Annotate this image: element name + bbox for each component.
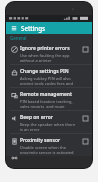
staticText: Ignore printer errors xyxy=(20,45,70,52)
staticText: Disable screen when the proximity sensor… xyxy=(20,145,79,154)
button[interactable]: Ignore printer errors xyxy=(6,42,92,64)
button[interactable]: Beep on error xyxy=(6,111,92,133)
staticText: Use when faulting the app without a prin… xyxy=(20,53,79,62)
button[interactable]: Ignore printer errors toggle xyxy=(81,45,89,53)
button[interactable]: Proximity sensor xyxy=(6,134,92,156)
staticText: Asking subkey PIN will also protect tool… xyxy=(20,76,79,85)
staticText: Beep the speaker when there is an error xyxy=(20,122,79,131)
staticText: PIN based location tracking, sales repor… xyxy=(20,99,79,108)
staticText: Remote management xyxy=(20,91,72,98)
button[interactable]: Navigate up xyxy=(6,22,92,34)
staticText: Proximity sensor xyxy=(20,137,61,144)
staticText: General xyxy=(10,35,27,41)
button[interactable]: Remote management xyxy=(6,88,92,110)
staticText: Change settings PIN xyxy=(20,68,69,75)
staticText: Beep on error xyxy=(20,114,53,121)
button[interactable]: Proximity sensor toggle xyxy=(81,137,89,145)
button[interactable]: Navigate up xyxy=(9,23,19,33)
button[interactable]: Change settings PIN xyxy=(6,65,92,87)
staticText: Settings xyxy=(21,24,46,32)
button[interactable]: Beep on error toggle xyxy=(81,114,89,122)
